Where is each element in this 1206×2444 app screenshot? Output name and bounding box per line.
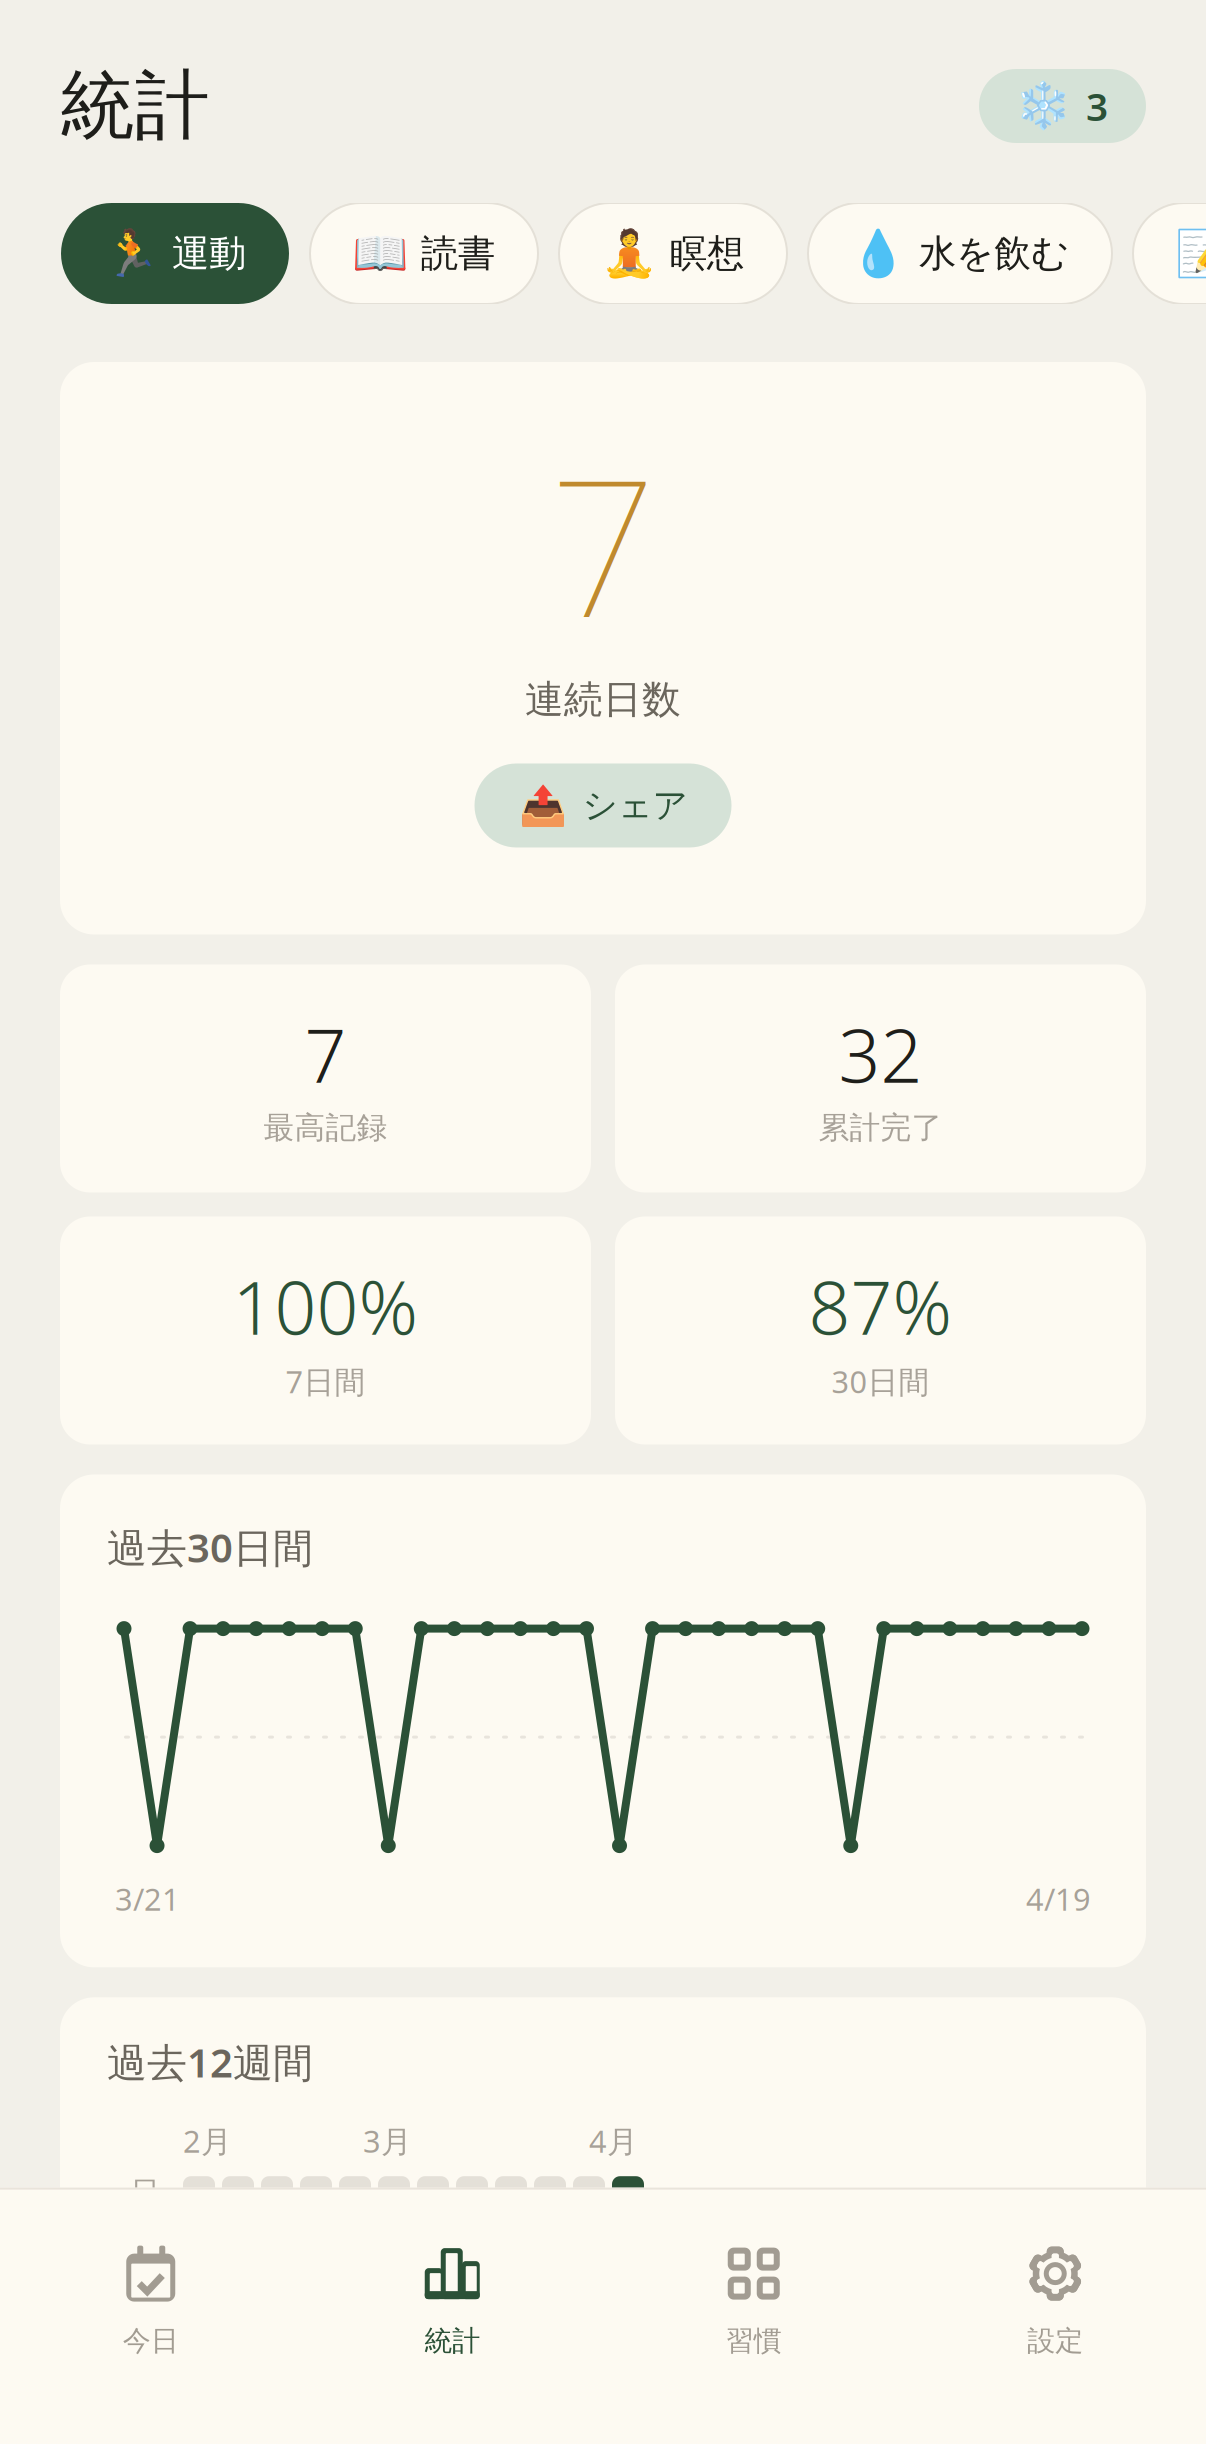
staticText: 7 [304, 1005, 346, 1103]
button[interactable]: 💧 [808, 203, 1112, 304]
button[interactable]: 🧘 [559, 203, 787, 304]
staticText: 連続日数 [525, 676, 681, 723]
staticText: 📤 [518, 783, 566, 828]
staticText: 今日 [123, 2324, 179, 2358]
staticText: 設定 [1027, 2324, 1083, 2358]
staticText: 累計完了 [818, 1109, 942, 1147]
staticText: 3/21 [115, 1879, 180, 1919]
staticText: 🧘 [601, 228, 657, 279]
staticText: 統計 [60, 60, 210, 152]
staticText: 87% [808, 1257, 952, 1355]
button[interactable]: 📝 [1133, 203, 1206, 304]
staticText: 過去30日間 [107, 1520, 313, 1574]
staticText: 3 [1086, 80, 1108, 132]
staticText: 7 [549, 418, 657, 670]
button[interactable]: 習慣 [603, 2246, 904, 2358]
staticText: 4/19 [1026, 1879, 1091, 1919]
staticText: 4月 [589, 2120, 638, 2161]
staticText: 📖 [352, 228, 408, 279]
staticText: 💧 [850, 228, 906, 279]
button[interactable]: 統計 [301, 2246, 603, 2358]
staticText: 過去12週間 [107, 2035, 313, 2088]
button[interactable]: ストリークフリーズ 3 [979, 69, 1146, 143]
staticText: 読書 [421, 231, 495, 276]
staticText: 🏃 [103, 228, 159, 279]
button[interactable]: 設定 [904, 2246, 1206, 2358]
staticText: シェア [582, 784, 687, 827]
button[interactable]: 今日 [0, 2246, 301, 2358]
staticText: 習慣 [726, 2324, 782, 2358]
staticText: 📝 [1175, 228, 1206, 279]
button[interactable]: 📖 [310, 203, 538, 304]
staticText: 統計 [424, 2324, 480, 2358]
staticText: 32 [838, 1005, 922, 1103]
staticText: 30日間 [831, 1361, 929, 1402]
staticText: 運動 [172, 231, 246, 276]
staticText: 日 [130, 2174, 159, 2210]
staticText: 水を飲む [919, 231, 1069, 276]
staticText: 3月 [363, 2120, 412, 2161]
staticText: 最高記録 [263, 1109, 387, 1147]
staticText: 7日間 [285, 1361, 365, 1402]
button[interactable]: 📤 [474, 763, 731, 847]
button[interactable]: 🏃 [61, 203, 289, 304]
staticText: 100% [232, 1257, 418, 1355]
staticText: 2月 [183, 2120, 232, 2161]
staticText: 瞑想 [670, 231, 744, 276]
staticText: ❄️ [1015, 80, 1071, 132]
